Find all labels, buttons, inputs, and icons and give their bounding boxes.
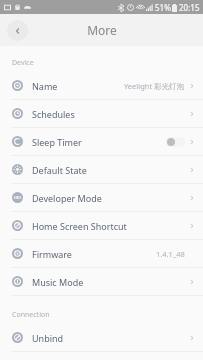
staticText: Home Screen Shortcut [32,220,127,232]
button[interactable]: Sleep Timer [0,128,203,156]
button[interactable]: Unbind [0,324,203,352]
button[interactable]: Schedules [0,100,203,128]
button[interactable]: Developer Mode [0,184,203,212]
button[interactable]: Music Mode [0,268,203,296]
button[interactable]: Firmware [0,240,203,268]
staticText: Name [32,80,58,92]
staticText: 51% [155,2,171,13]
staticText: Connection [12,310,50,320]
staticText: Yeelight 彩光灯泡 [124,81,185,91]
staticText: Default State [32,164,87,176]
staticText: Firmware [32,248,72,260]
staticText: More [87,22,117,38]
button[interactable]: Name [0,72,203,100]
button[interactable]: Back [7,20,28,41]
staticText: Developer Mode [32,192,102,204]
staticText: Schedules [32,108,75,120]
staticText: Music Mode [32,276,84,288]
staticText: Device [12,58,34,68]
staticText: 1.4.1_48 [156,249,185,259]
button[interactable]: Home Screen Shortcut [0,212,203,240]
staticText: 20:15 [179,2,200,13]
button[interactable]: Default State [0,156,203,184]
staticText: Sleep Timer [32,136,82,148]
button[interactable] [166,137,185,147]
staticText: Unbind [32,332,64,344]
